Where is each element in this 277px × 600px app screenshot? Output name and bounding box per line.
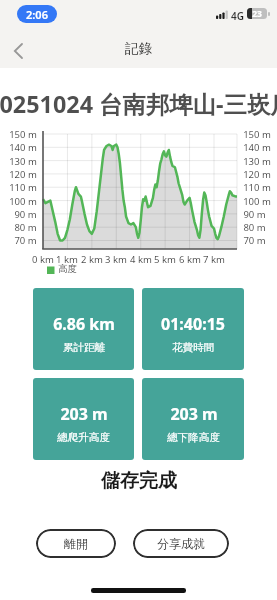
staticText: 01:40:15 [161,313,225,335]
staticText: 100 m [243,195,271,208]
staticText: 6 km [179,253,201,266]
staticText: 100 m [9,195,37,208]
staticText: 203 m [170,403,218,425]
button[interactable] [14,44,22,58]
staticText: 4 km [130,253,152,266]
staticText: 離開 [64,536,88,551]
staticText: 203 m [60,403,108,425]
staticText: 4G [231,9,244,23]
staticText: 150 m [9,128,37,141]
button[interactable]: 2:06 [17,5,57,23]
staticText: 3 km [105,253,127,266]
staticText: 儲存完成 [101,469,177,493]
staticText: 1 km [56,253,78,266]
staticText: 0 km [32,253,54,266]
staticText: 110 m [243,181,271,194]
button[interactable]: 6.86 km [33,288,134,370]
staticText: 20251024 台南邦埤山-三崁店山 [0,88,277,120]
staticText: 140 m [243,141,271,154]
button[interactable]: 203 m [142,378,244,460]
staticText: 130 m [9,155,37,168]
staticText: 80 m [14,221,37,234]
staticText: 5 km [154,253,176,266]
staticText: 2:06 [26,7,48,22]
staticText: 110 m [9,181,37,194]
staticText: 90 m [14,208,37,221]
staticText: 2 km [81,253,103,266]
staticText: 120 m [243,168,271,181]
staticText: 70 m [243,234,266,247]
staticText: 70 m [14,234,37,247]
button[interactable]: 01:40:15 [142,288,244,370]
button[interactable]: 離開 [36,529,116,558]
staticText: 23 [252,8,262,19]
staticText: 150 m [243,128,271,141]
button[interactable]: 分享成就 [133,529,229,558]
staticText: 6.86 km [53,313,115,335]
staticText: 120 m [9,168,37,181]
staticText: 80 m [243,221,266,234]
staticText: 130 m [243,155,271,168]
staticText: 90 m [243,208,266,221]
staticText: 總下降高度 [167,431,220,444]
staticText: 分享成就 [157,536,205,551]
staticText: 7 km [203,253,225,266]
staticText: 高度 [58,263,77,275]
staticText: 總爬升高度 [57,431,110,444]
staticText: 140 m [9,141,37,154]
staticText: 花費時間 [172,341,214,354]
button[interactable]: 203 m [33,378,134,460]
staticText: 記錄 [125,40,152,57]
staticText: 累計距離 [63,341,105,354]
